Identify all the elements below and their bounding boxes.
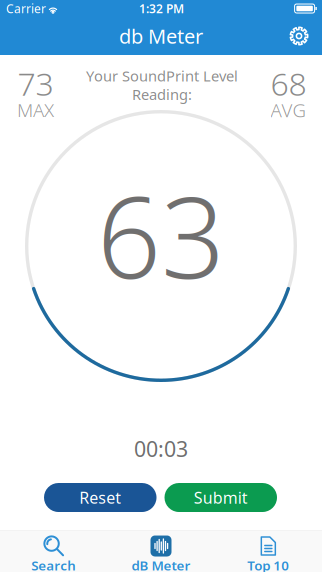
button[interactable]: Top 10 <box>215 530 322 572</box>
button[interactable]: Submit <box>164 483 277 512</box>
staticText: AVG <box>270 97 306 122</box>
staticText: MAX <box>17 97 54 122</box>
staticText: Reading: <box>132 84 192 104</box>
button[interactable]: dB Meter <box>107 530 215 572</box>
staticText: 00:03 <box>134 435 188 463</box>
staticText: 73 <box>17 62 53 104</box>
staticText: Submit <box>194 487 248 508</box>
staticText: Reset <box>79 487 121 508</box>
button[interactable]: Search <box>0 530 107 572</box>
staticText: 63 <box>97 161 225 309</box>
staticText: dB Meter <box>131 556 190 572</box>
staticText: Search <box>31 556 76 572</box>
staticText: Your SoundPrint Level <box>86 66 238 85</box>
staticText: 68 <box>270 62 306 104</box>
button[interactable]: Settings <box>280 17 318 55</box>
staticText: Carrier <box>6 0 46 16</box>
staticText: db Meter <box>119 23 203 49</box>
button[interactable]: Reset <box>44 483 156 512</box>
staticText: 1:32 PM <box>139 0 184 16</box>
staticText: Top 10 <box>247 556 289 572</box>
